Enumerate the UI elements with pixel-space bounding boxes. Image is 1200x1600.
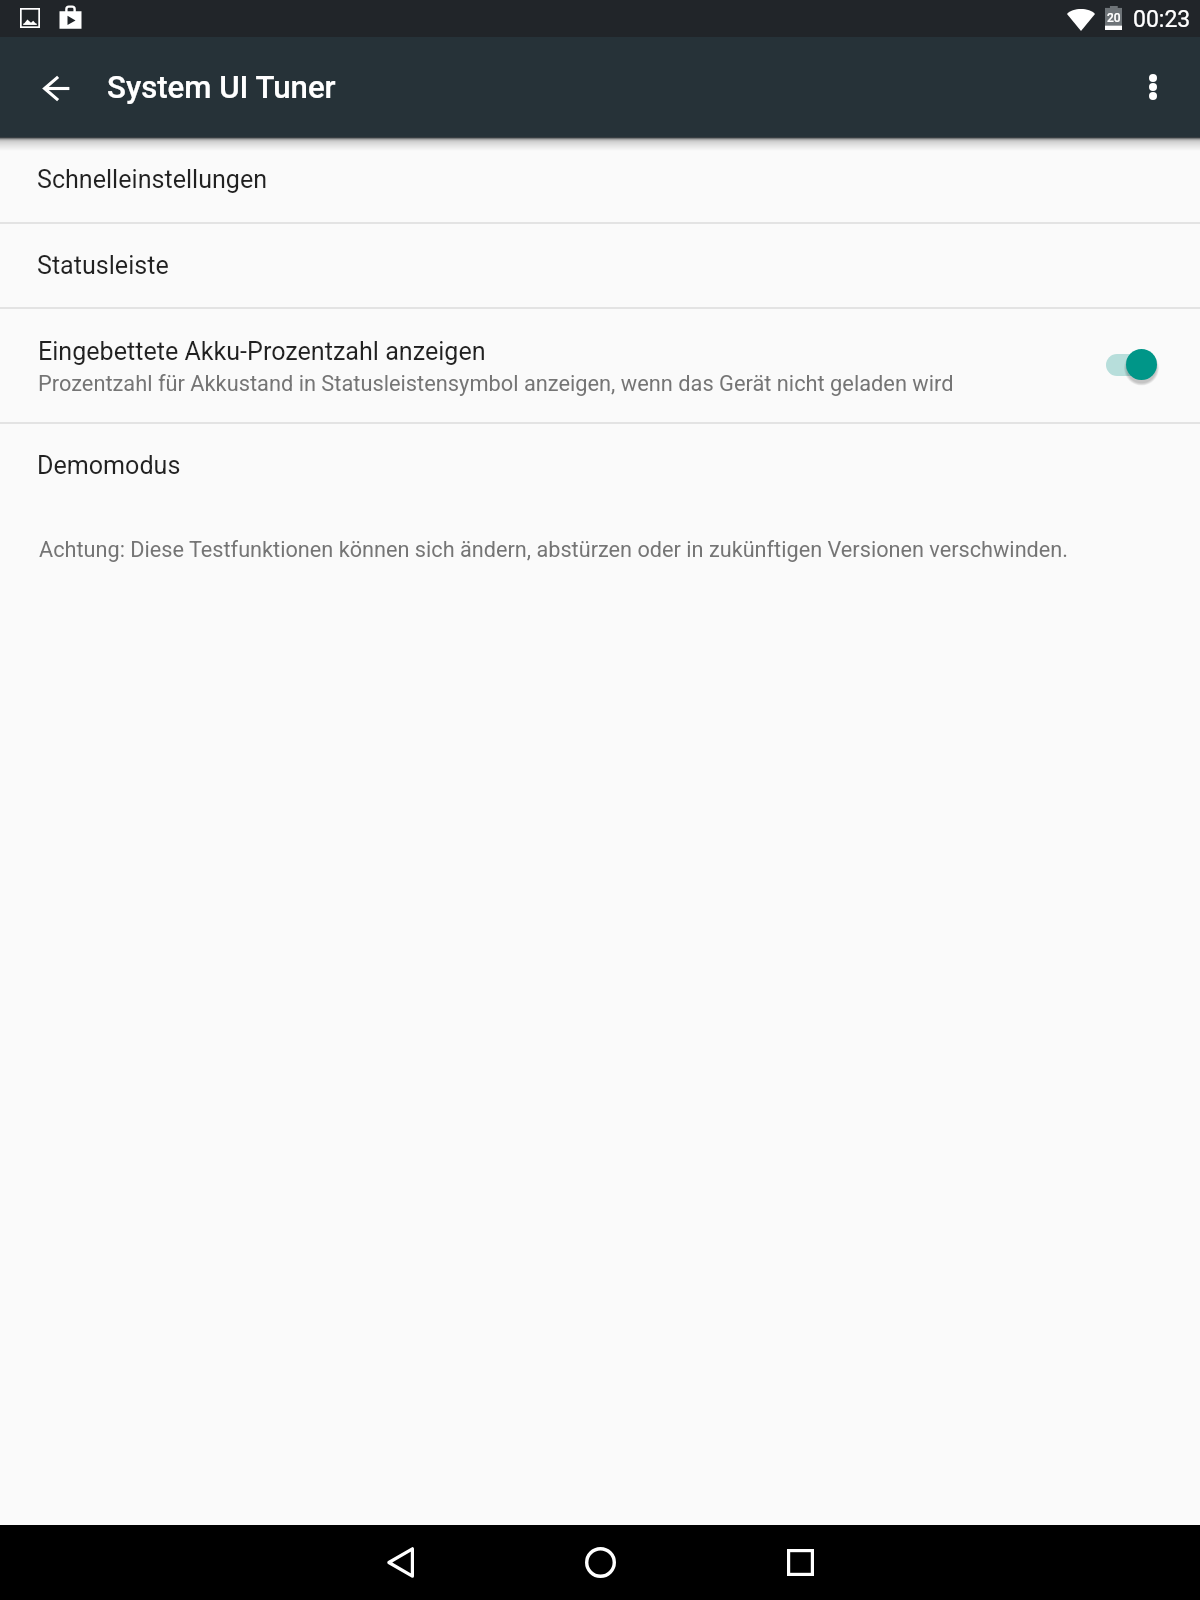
staticText: 20 (1107, 11, 1121, 25)
staticText: Statusleiste (37, 251, 169, 280)
staticText: Eingebettete Akku-Prozentzahl anzeigen (38, 337, 486, 366)
button[interactable]: Statusleiste (0, 224, 1200, 307)
button[interactable]: Back (20, 38, 92, 138)
button[interactable]: Demomodus (0, 424, 1200, 507)
staticText: Schnelleinstellungen (37, 165, 268, 194)
staticText: Demomodus (37, 451, 181, 480)
staticText: System UI Tuner (107, 69, 336, 106)
button[interactable]: Eingebettete Akku-Prozentzahl anzeigen (0, 309, 1200, 422)
button[interactable]: Back (300, 1525, 500, 1600)
button[interactable]: Eingebettete Akku-Prozentzahl anzeigen (1098, 340, 1164, 396)
staticText: Achtung: Diese Testfunktionen können sic… (39, 537, 1069, 562)
staticText: 00:23 (1133, 6, 1191, 33)
button[interactable]: Recent apps (700, 1525, 900, 1600)
button[interactable]: Schnelleinstellungen (0, 137, 1200, 222)
button[interactable]: More options (1117, 37, 1189, 137)
button[interactable]: Home (500, 1525, 700, 1600)
staticText: Prozentzahl für Akkustand in Statusleist… (38, 371, 954, 397)
